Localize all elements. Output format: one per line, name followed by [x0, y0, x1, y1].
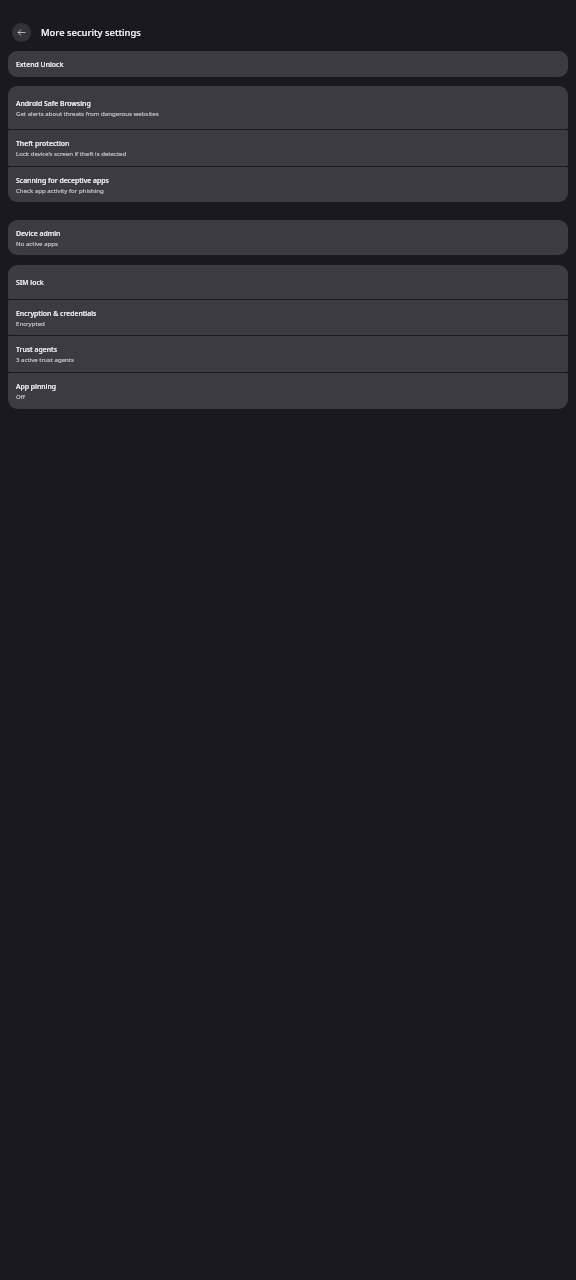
staticText: Theft protection: [16, 139, 70, 148]
staticText: Lock device’s screen if theft is detecte…: [16, 149, 127, 157]
staticText: Get alerts about threats from dangerous …: [16, 109, 159, 117]
button[interactable]: App pinning: [8, 373, 568, 409]
staticText: More security settings: [41, 26, 141, 39]
staticText: Check app activity for phishing: [16, 186, 104, 194]
button[interactable]: Extend Unlock: [8, 51, 568, 77]
button[interactable]: Theft protection: [8, 130, 568, 166]
button[interactable]: Device admin: [8, 220, 568, 255]
staticText: 3 active trust agents: [16, 355, 74, 363]
button[interactable]: Encryption & credentials: [8, 300, 568, 335]
button[interactable]: Back: [12, 23, 31, 42]
button[interactable]: Trust agents: [8, 336, 568, 372]
button[interactable]: SIM lock: [8, 265, 568, 299]
staticText: Trust agents: [16, 345, 58, 354]
staticText: Android Safe Browsing: [16, 99, 91, 108]
button[interactable]: Scanning for deceptive apps: [8, 167, 568, 202]
staticText: Off: [16, 392, 25, 400]
staticText: No active apps: [16, 239, 58, 247]
staticText: App pinning: [16, 382, 57, 391]
staticText: Device admin: [16, 229, 61, 238]
staticText: Scanning for deceptive apps: [16, 176, 109, 185]
staticText: SIM lock: [16, 278, 44, 287]
staticText: Extend Unlock: [16, 60, 64, 69]
button[interactable]: Android Safe Browsing: [8, 86, 568, 129]
staticText: Encrypted: [16, 319, 45, 327]
staticText: Encryption & credentials: [16, 309, 97, 318]
